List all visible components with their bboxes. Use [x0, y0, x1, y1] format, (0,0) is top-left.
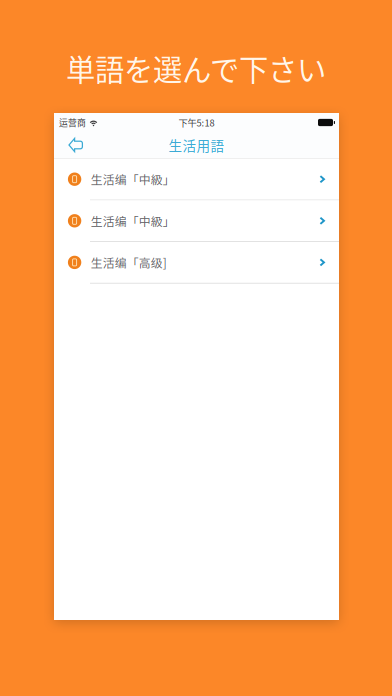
- staticText: 生活用語: [168, 135, 224, 155]
- staticText: 単語を選んで下さい: [66, 47, 326, 89]
- button[interactable]: 生活编「高级]: [54, 242, 339, 283]
- staticText: 生活编「中級」: [91, 212, 175, 229]
- staticText: 生活编「中級」: [91, 171, 175, 188]
- button[interactable]: 生活编「中級」: [54, 200, 339, 241]
- staticText: 运营商: [59, 116, 86, 129]
- button[interactable]: 生活编「中級」: [54, 159, 339, 200]
- staticText: 下午5:18: [178, 116, 214, 129]
- staticText: 生活编「高级]: [91, 254, 167, 271]
- button[interactable]: Back: [54, 132, 83, 158]
